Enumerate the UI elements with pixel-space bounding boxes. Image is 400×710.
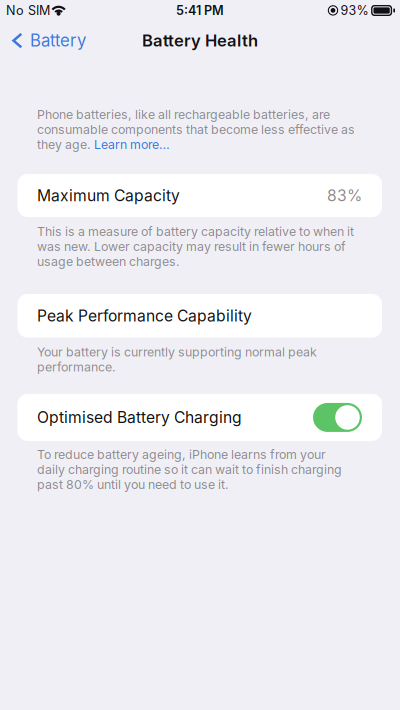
staticText: 83%: [327, 186, 362, 205]
staticText: Peak Performance Capability: [37, 306, 252, 325]
staticText: Battery: [30, 30, 86, 51]
staticText: Maximum Capacity: [37, 186, 180, 205]
staticText: 5:41 PM: [176, 3, 224, 18]
staticText: This is a measure of battery capacity re…: [37, 224, 354, 269]
staticText: No SIM: [6, 3, 50, 18]
staticText: Phone batteries, like all rechargeable b…: [37, 107, 355, 152]
button[interactable]: Peak Performance Capability: [0, 294, 400, 338]
staticText: Optimised Battery Charging: [37, 408, 242, 427]
staticText: To reduce battery ageing, iPhone learns …: [37, 447, 342, 492]
staticText: Battery Health: [142, 30, 258, 50]
button[interactable]: Battery: [0, 23, 96, 57]
staticText: 93%: [341, 3, 369, 18]
button[interactable]: Optimised Battery Charging: [313, 403, 362, 432]
staticText: Your battery is currently supporting nor…: [37, 345, 317, 375]
